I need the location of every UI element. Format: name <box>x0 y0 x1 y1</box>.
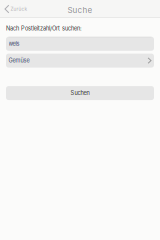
staticText: Suche <box>67 5 92 15</box>
staticText: Suchen <box>70 90 89 96</box>
button[interactable]: Gemüse <box>0 54 160 68</box>
staticText: Nach Postleitzahl/Ort suchen: <box>6 25 82 32</box>
button[interactable]: Zurück <box>0 1 28 17</box>
staticText: Gemüse <box>8 57 29 64</box>
staticText: Zurück <box>11 6 28 12</box>
button[interactable]: Suchen <box>0 86 160 100</box>
staticText: wels <box>8 40 19 47</box>
